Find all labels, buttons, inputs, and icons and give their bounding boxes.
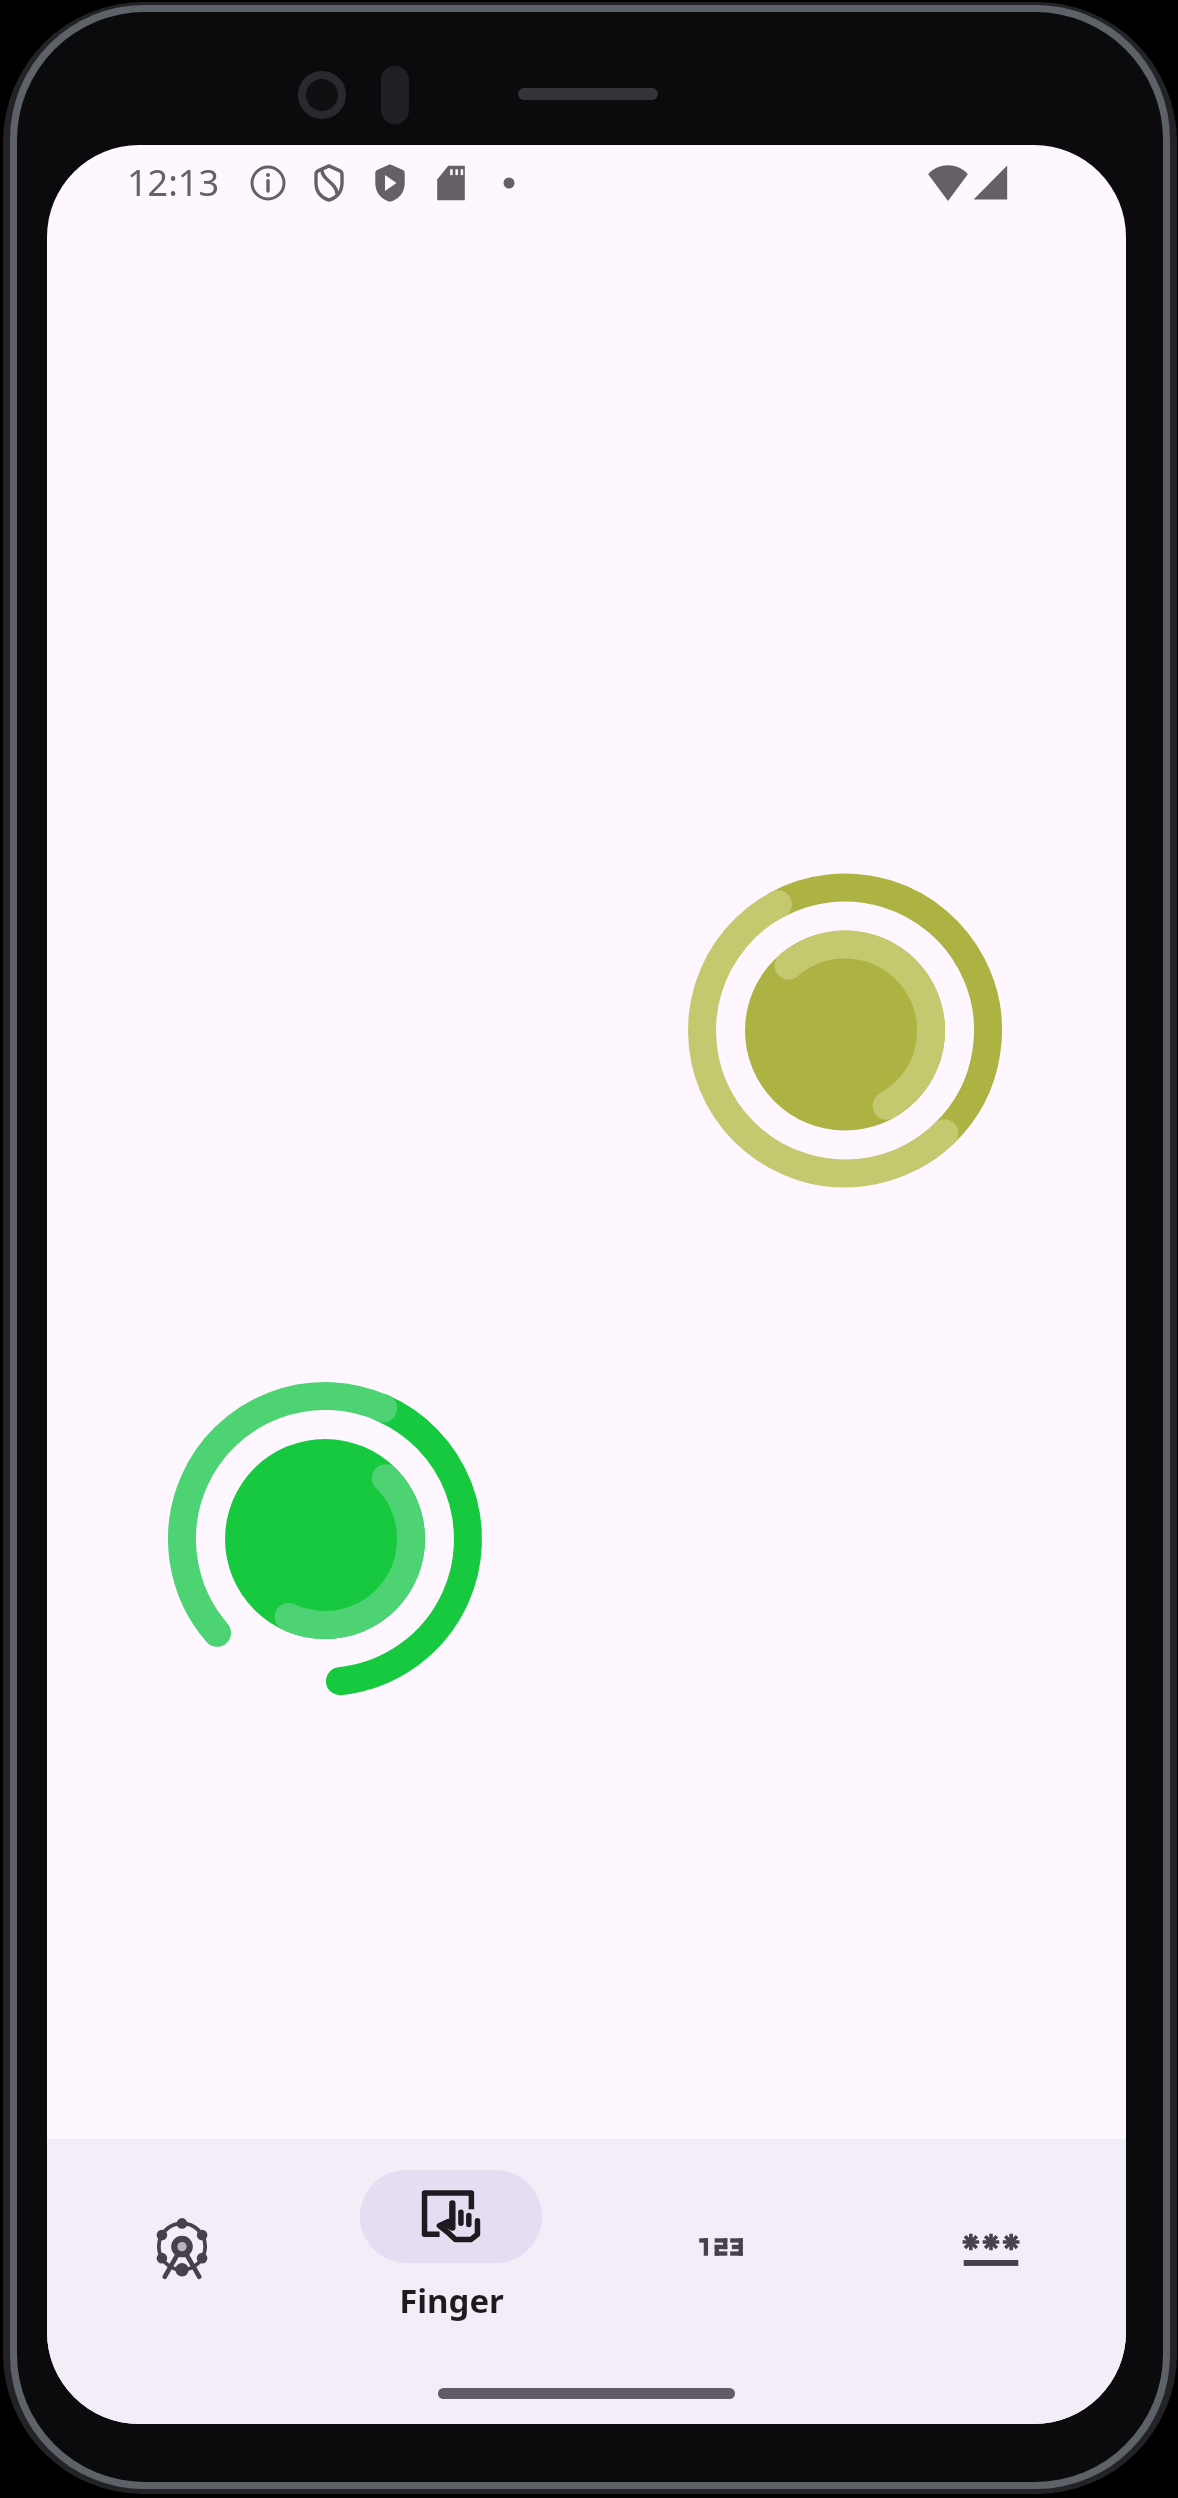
button[interactable]: Finger: [316, 2169, 586, 2324]
button[interactable]: Password: [856, 2169, 1126, 2324]
staticText: Finger: [399, 2278, 504, 2323]
staticText: 12:13: [127, 158, 220, 207]
button[interactable]: Attractions: [47, 2169, 316, 2324]
button[interactable]: Numbers: [586, 2169, 856, 2324]
